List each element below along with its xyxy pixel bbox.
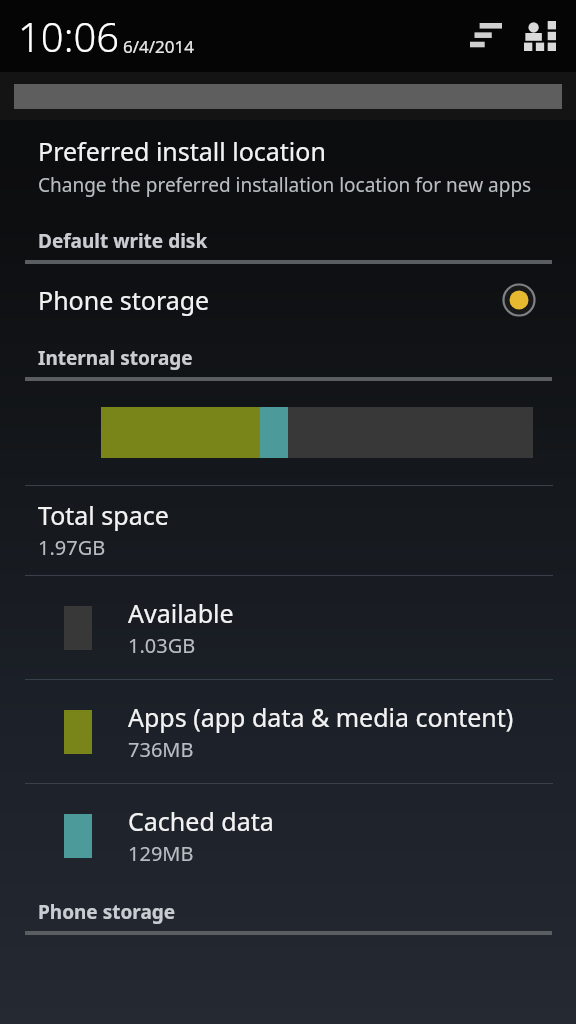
staticText: Default write disk <box>38 228 208 254</box>
staticText: Available <box>128 596 234 630</box>
button[interactable]: Signal bars <box>464 14 508 58</box>
button[interactable]: Phone storage <box>0 264 576 336</box>
staticText: Total space <box>38 498 169 532</box>
button[interactable]: Cached data <box>0 784 576 887</box>
staticText: Cached data <box>128 804 274 838</box>
staticText: 10:06 <box>18 9 120 63</box>
button[interactable]: Total space <box>0 486 576 575</box>
staticText: Apps (app data & media content) <box>128 700 514 734</box>
staticText: 1.97GB <box>38 534 106 561</box>
staticText: Preferred install location <box>38 134 326 168</box>
staticText: 736MB <box>128 736 194 763</box>
staticText: Internal storage <box>38 345 193 371</box>
button[interactable]: Apps (app data & media content) <box>0 680 576 783</box>
button[interactable]: Preferred install location <box>0 120 576 208</box>
staticText: Phone storage <box>38 899 176 925</box>
staticText: 129MB <box>128 840 194 867</box>
staticText: Phone storage <box>38 283 502 317</box>
button[interactable]: Available <box>0 576 576 679</box>
staticText: Change the preferred installation locati… <box>38 172 532 198</box>
staticText: 6/4/2014 <box>123 35 194 58</box>
button[interactable]: Contacts <box>518 14 562 58</box>
staticText: 1.03GB <box>128 632 196 659</box>
